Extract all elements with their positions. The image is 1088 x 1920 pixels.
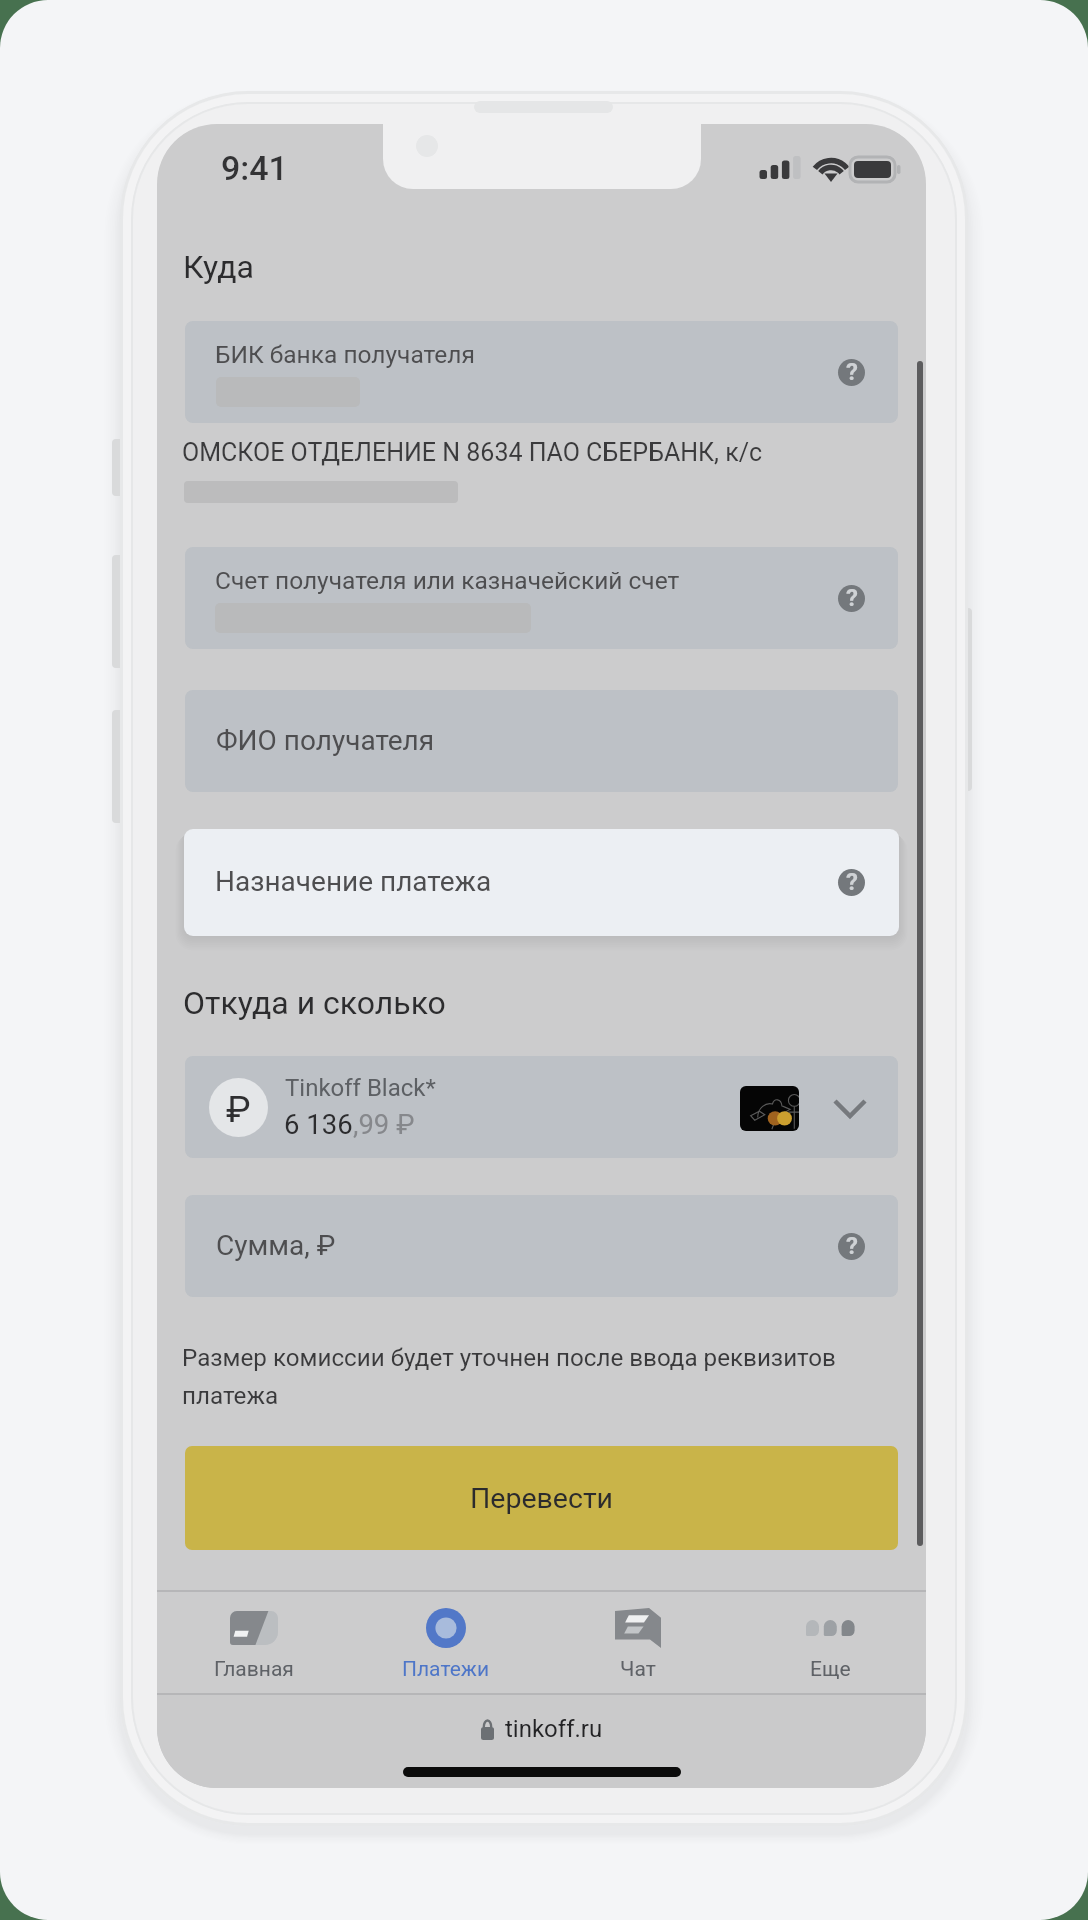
staticText: Чат: [620, 1657, 656, 1682]
staticText: ?: [846, 358, 858, 385]
button[interactable]: Перевести: [185, 1446, 898, 1550]
button[interactable]: Чат: [542, 1592, 734, 1694]
button[interactable]: Подсказка: [838, 585, 865, 612]
staticText: БИК банка получателя: [215, 340, 475, 369]
button[interactable]: БИК банка получателя: [185, 321, 898, 423]
button[interactable]: Выбрать карту: [833, 1099, 867, 1118]
staticText: ?: [846, 1232, 858, 1259]
button[interactable]: Подсказка: [838, 869, 865, 896]
button[interactable]: Подсказка: [838, 1233, 865, 1260]
staticText: Сумма, ₽: [216, 1229, 336, 1262]
staticText: Назначение платежа: [215, 865, 492, 898]
staticText: ?: [846, 868, 858, 895]
staticText: ₽: [226, 1088, 251, 1131]
staticText: ?: [846, 584, 858, 611]
staticText: Куда: [183, 248, 254, 286]
staticText: Размер комиссии будет уточнен после ввод…: [182, 1344, 854, 1410]
button[interactable]: tinkoff.ru: [157, 1704, 926, 1754]
staticText: tinkoff.ru: [505, 1715, 603, 1743]
button[interactable]: Платежи: [350, 1592, 542, 1694]
button[interactable]: Сумма, ₽: [185, 1195, 898, 1297]
button[interactable]: Подсказка: [838, 359, 865, 386]
staticText: ОМСКОЕ ОТДЕЛЕНИЕ N 8634 ПАО СБЕРБАНК, к/…: [182, 438, 763, 467]
staticText: Откуда и сколько: [183, 984, 446, 1022]
button[interactable]: ₽: [185, 1056, 898, 1158]
button[interactable]: Счет получателя или казначейский счет: [185, 547, 898, 649]
staticText: ,99 ₽: [353, 1108, 415, 1140]
staticText: Платежи: [402, 1657, 490, 1682]
button[interactable]: Назначение платежа: [184, 829, 899, 936]
button[interactable]: Еще: [734, 1592, 926, 1694]
staticText: 6 136: [284, 1108, 353, 1140]
staticText: Счет получателя или казначейский счет: [215, 566, 680, 595]
staticText: ФИО получателя: [216, 724, 435, 757]
staticText: Tinkoff Black*: [285, 1074, 436, 1102]
staticText: 9:41: [221, 148, 288, 188]
button[interactable]: Главная: [157, 1592, 350, 1694]
button[interactable]: ФИО получателя: [185, 690, 898, 792]
staticText: Главная: [214, 1657, 294, 1682]
staticText: Еще: [810, 1657, 851, 1682]
staticText: Перевести: [470, 1482, 614, 1515]
